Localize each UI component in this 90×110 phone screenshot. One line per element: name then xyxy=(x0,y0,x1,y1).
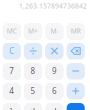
button[interactable]: 8 xyxy=(24,63,42,79)
staticText: 6 xyxy=(52,86,57,96)
button[interactable]: MR xyxy=(67,23,85,39)
button[interactable]: 5 xyxy=(24,83,42,99)
button[interactable]: Minus xyxy=(67,63,85,79)
staticText: MC xyxy=(7,27,17,35)
button[interactable]: Divide xyxy=(24,43,42,59)
staticText: 2 xyxy=(31,106,36,110)
button[interactable]: 6 xyxy=(45,83,63,99)
button[interactable]: = xyxy=(67,103,85,110)
staticText: 3 xyxy=(52,106,57,110)
button[interactable]: Multiply xyxy=(45,43,63,59)
button[interactable]: C xyxy=(3,43,21,59)
button[interactable]: M- xyxy=(45,23,63,39)
staticText: C xyxy=(9,46,14,56)
staticText: 4 xyxy=(9,86,14,96)
button[interactable]: M+ xyxy=(24,23,42,39)
button[interactable]: Plus xyxy=(67,83,85,99)
staticText: 9 xyxy=(52,66,57,76)
button[interactable]: 3 xyxy=(45,103,63,110)
staticText: M- xyxy=(50,27,58,35)
button[interactable]: Delete xyxy=(67,43,85,59)
staticText: 7 xyxy=(9,66,14,76)
button[interactable]: 2 xyxy=(24,103,42,110)
staticText: M+ xyxy=(28,27,38,35)
button[interactable]: MC xyxy=(3,23,21,39)
button[interactable]: 7 xyxy=(3,63,21,79)
button[interactable]: 4 xyxy=(3,83,21,99)
staticText: 1 xyxy=(9,106,14,110)
staticText: 8 xyxy=(31,66,36,76)
staticText: 1,263.157894736842 xyxy=(19,2,87,10)
staticText: 5 xyxy=(31,86,36,96)
staticText: MR xyxy=(71,27,81,35)
button[interactable]: 1 xyxy=(3,103,21,110)
button[interactable]: 9 xyxy=(45,63,63,79)
